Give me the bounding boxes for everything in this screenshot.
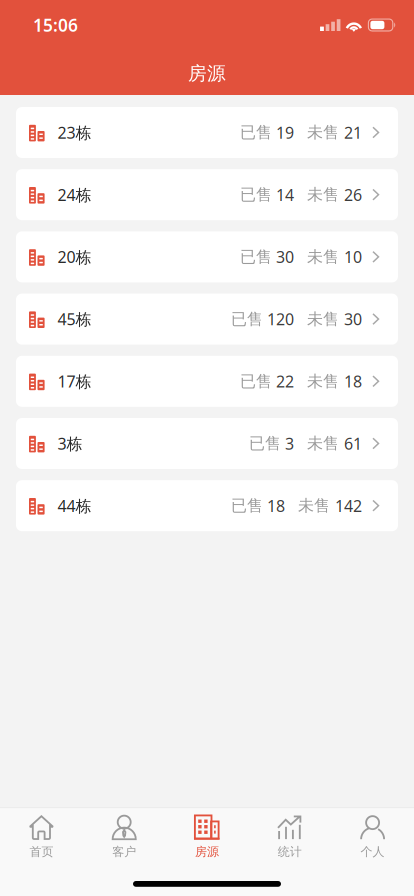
staticText: 未售 [307,309,339,329]
staticText: 未售 [307,123,339,142]
staticText: 17栋 [58,371,92,392]
staticText: 26 [344,184,362,205]
button[interactable]: 房源 [166,808,248,858]
staticText: 3 [285,433,294,454]
staticText: 客户 [112,844,136,859]
staticText: 未售 [307,434,339,453]
button[interactable]: 17栋 [16,356,398,407]
staticText: 未售 [307,247,339,267]
staticText: 3栋 [58,433,83,454]
button[interactable]: 个人 [331,808,414,858]
staticText: 个人 [361,844,385,859]
staticText: 未售 [307,371,339,391]
staticText: 24栋 [58,184,92,205]
staticText: 61 [344,433,362,454]
staticText: 已售 [231,309,263,329]
staticText: 45栋 [58,308,92,330]
button[interactable]: 23栋 [16,107,398,158]
staticText: 已售 [240,185,272,205]
staticText: 18 [344,371,362,392]
staticText: 统计 [278,844,302,859]
staticText: 14 [276,184,294,205]
staticText: 10 [344,246,362,267]
staticText: 22 [276,371,294,392]
staticText: 142 [335,495,362,516]
button[interactable]: 首页 [0,808,83,858]
staticText: 未售 [298,496,330,516]
staticText: 30 [276,246,294,267]
staticText: 已售 [231,496,263,516]
staticText: 已售 [240,123,272,142]
staticText: 已售 [249,434,281,453]
staticText: 首页 [29,844,53,859]
staticText: 房源 [188,62,226,85]
staticText: 20栋 [58,246,92,267]
staticText: 18 [267,495,285,516]
button[interactable]: 3栋 [16,418,398,469]
staticText: 房源 [195,844,219,859]
staticText: 23栋 [58,122,92,143]
staticText: 30 [344,308,362,330]
button[interactable]: 统计 [248,808,331,858]
staticText: 21 [344,122,362,143]
staticText: 已售 [240,371,272,391]
button[interactable]: 44栋 [16,480,398,531]
button[interactable]: 客户 [83,808,166,858]
staticText: 44栋 [58,495,92,516]
staticText: 已售 [240,247,272,267]
staticText: 15:06 [33,13,78,36]
button[interactable]: 20栋 [16,231,398,282]
staticText: 未售 [307,185,339,205]
button[interactable]: 45栋 [16,294,398,345]
button[interactable]: 24栋 [16,169,398,220]
staticText: 120 [267,308,294,330]
staticText: 19 [276,122,294,143]
